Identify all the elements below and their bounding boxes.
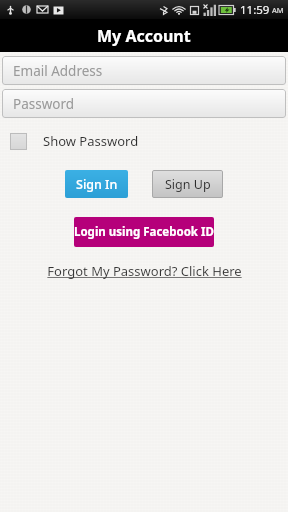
staticText: Forgot My Password? Click Here: [47, 262, 242, 280]
staticText: Email Address: [13, 62, 103, 80]
button[interactable]: Login using Facebook ID: [74, 217, 214, 247]
button[interactable]: Forgot My Password? Click Here: [47, 262, 242, 280]
button[interactable]: Show Password: [10, 132, 139, 150]
button[interactable]: Password: [2, 89, 286, 118]
staticText: Login using Facebook ID: [74, 224, 214, 240]
staticText: AM: [272, 5, 284, 15]
staticText: Password: [13, 95, 75, 113]
staticText: My Account: [97, 25, 191, 47]
staticText: Sign In: [76, 176, 118, 193]
staticText: Sign Up: [165, 176, 211, 193]
button[interactable]: Sign In: [65, 170, 128, 198]
staticText: Show Password: [43, 132, 139, 150]
button[interactable]: Email Address: [2, 56, 286, 85]
button[interactable]: Sign Up: [152, 170, 223, 198]
staticText: 11:59: [240, 2, 270, 18]
